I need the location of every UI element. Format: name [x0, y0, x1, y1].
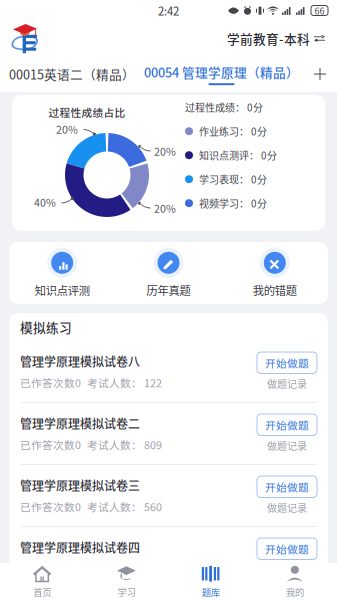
button[interactable]: 做题记录 [267, 438, 307, 453]
button[interactable]: 开始做题 [257, 414, 317, 435]
staticText: 做题记录 [267, 438, 307, 453]
staticText: 开始做题 [265, 417, 309, 432]
staticText: 做题记录 [267, 376, 307, 391]
button[interactable]: 学前教育-本科 [227, 29, 325, 48]
staticText: 开始做题 [265, 541, 309, 556]
staticText: 管理学原理模拟试卷二 [20, 415, 140, 432]
staticText: 作业练习： 0分 [199, 124, 267, 138]
staticText: 已作答次数0 考试人数： 122 [20, 375, 162, 390]
button[interactable]: 开始做题 [257, 476, 317, 497]
button[interactable]: 题库 [168, 564, 253, 599]
staticText: 已作答次数0 考试人数： 429 [20, 561, 162, 576]
staticText: 20% [56, 121, 78, 137]
staticText: 视频学习： 0分 [199, 196, 267, 210]
button[interactable]: 历年真题 [146, 248, 190, 298]
staticText: 首页 [33, 585, 51, 599]
button[interactable]: 00015英语二（精品） [0, 65, 135, 83]
button[interactable]: 开始做题 [257, 538, 317, 559]
staticText: 管理学原理模拟试卷八 [20, 353, 140, 370]
staticText: 学习 [117, 585, 135, 599]
button[interactable]: 开始做题 [257, 352, 317, 373]
staticText: 管理学原理模拟试卷四 [20, 539, 140, 556]
staticText: 开始做题 [265, 355, 309, 370]
staticText: 题库 [202, 585, 220, 599]
staticText: 过程性成绩： 0分 [185, 100, 263, 114]
staticText: 40% [34, 194, 56, 210]
staticText: 过程性成绩占比 [48, 104, 125, 120]
button[interactable]: 做题记录 [267, 500, 307, 515]
staticText: 知识点评测 [35, 282, 90, 298]
staticText: 我的错题 [253, 282, 297, 298]
staticText: 我的 [286, 585, 304, 599]
button[interactable]: 学习 [84, 564, 168, 599]
button[interactable]: 首页 [0, 564, 84, 599]
staticText: 已作答次数0 考试人数： 560 [20, 499, 162, 514]
staticText: 2:42 [158, 2, 179, 19]
staticText: 模拟练习 [20, 318, 72, 336]
staticText: 学习表现： 0分 [199, 172, 267, 186]
staticText: 管理学原理模拟试卷三 [20, 477, 140, 494]
staticText: 00054 管理学原理（精品） [144, 63, 299, 81]
button[interactable]: 做题记录 [267, 376, 307, 391]
staticText: 20% [154, 143, 176, 159]
button[interactable]: Add course [308, 68, 337, 80]
button[interactable]: 00054 管理学原理（精品） [144, 63, 299, 85]
staticText: 已作答次数0 考试人数： 809 [20, 437, 162, 452]
staticText: 知识点测评： 0分 [199, 148, 277, 162]
staticText: 开始做题 [265, 479, 309, 494]
staticText: 做题记录 [267, 500, 307, 515]
button[interactable]: 我的 [253, 564, 337, 599]
staticText: 20% [154, 200, 176, 216]
staticText: 做题记录 [267, 562, 307, 577]
staticText: 66 [314, 4, 324, 17]
staticText: 历年真题 [146, 282, 190, 298]
button[interactable]: 做题记录 [267, 562, 307, 577]
button[interactable]: 知识点评测 [35, 248, 90, 298]
staticText: 学前教育-本科 [227, 29, 310, 48]
button[interactable]: 我的错题 [253, 248, 297, 298]
staticText: 00015英语二（精品） [9, 65, 135, 83]
